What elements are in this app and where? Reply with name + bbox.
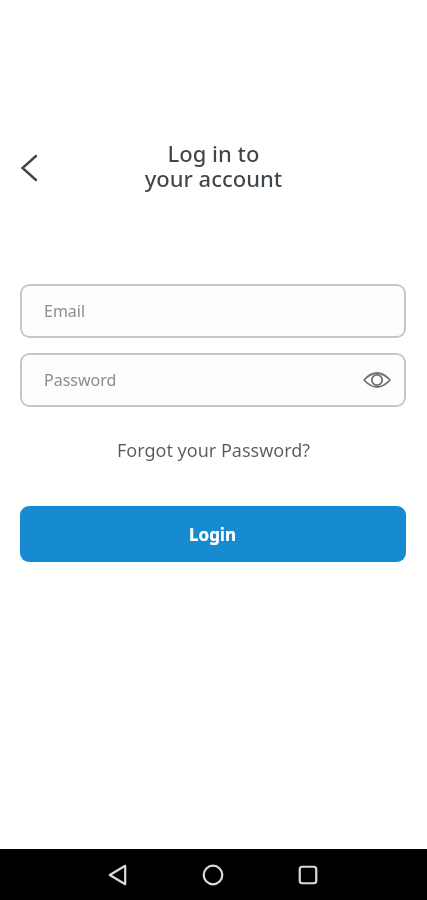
staticText: Password — [44, 369, 117, 391]
button[interactable] — [361, 364, 393, 396]
button[interactable] — [96, 853, 140, 897]
staticText: Login — [189, 523, 237, 546]
button[interactable] — [286, 853, 330, 897]
button[interactable]: Email — [20, 284, 406, 338]
staticText: Email — [44, 300, 86, 322]
button[interactable]: Forgot your Password? — [0, 438, 427, 463]
button[interactable]: Login — [20, 506, 406, 562]
button[interactable] — [191, 853, 235, 897]
button[interactable]: Password — [20, 353, 406, 407]
button[interactable] — [8, 146, 52, 190]
staticText: Forgot your Password? — [117, 438, 311, 463]
staticText: Log in to your account — [0, 138, 427, 194]
